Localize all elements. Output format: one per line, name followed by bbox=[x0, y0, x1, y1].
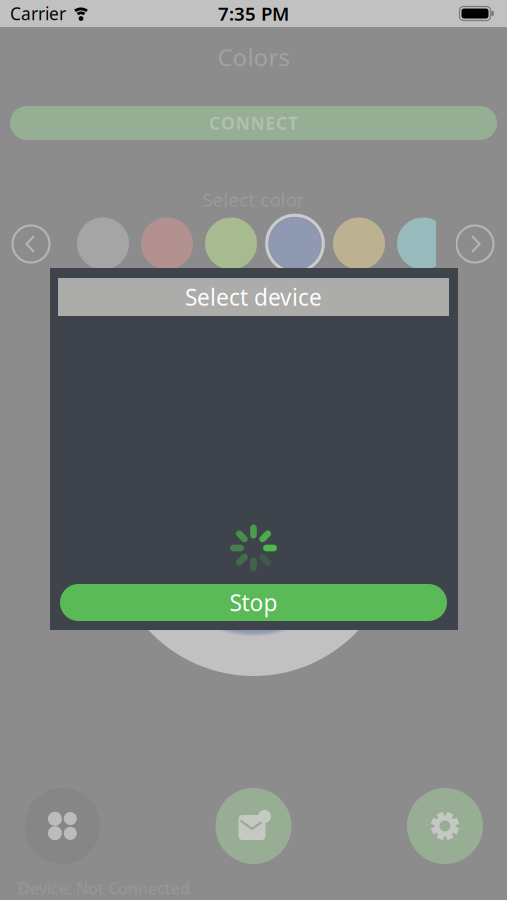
button[interactable]: More colors bbox=[455, 224, 494, 263]
button[interactable]: Yellow bbox=[333, 217, 385, 269]
staticText: Select color bbox=[202, 187, 304, 212]
button[interactable]: Settings bbox=[407, 788, 483, 864]
button[interactable]: Teal bbox=[397, 217, 449, 269]
button[interactable]: Green bbox=[205, 217, 257, 269]
button[interactable]: Stop bbox=[60, 584, 447, 621]
staticText: Device: Not Connected bbox=[18, 877, 190, 899]
button[interactable]: Previous colors bbox=[11, 224, 50, 263]
button[interactable]: Gray bbox=[77, 217, 129, 269]
button[interactable]: CONNECT bbox=[10, 106, 497, 140]
staticText: CONNECT bbox=[209, 111, 298, 134]
staticText: Select device bbox=[185, 282, 322, 312]
staticText: Carrier bbox=[10, 2, 66, 25]
button[interactable]: Feedback bbox=[215, 788, 291, 864]
staticText: Stop bbox=[229, 587, 277, 617]
button[interactable]: Presets bbox=[24, 788, 100, 864]
button[interactable]: Blue bbox=[265, 213, 325, 273]
staticText: 7:35 PM bbox=[218, 1, 289, 26]
staticText: Colors bbox=[217, 41, 289, 73]
button[interactable]: Red bbox=[141, 217, 193, 269]
